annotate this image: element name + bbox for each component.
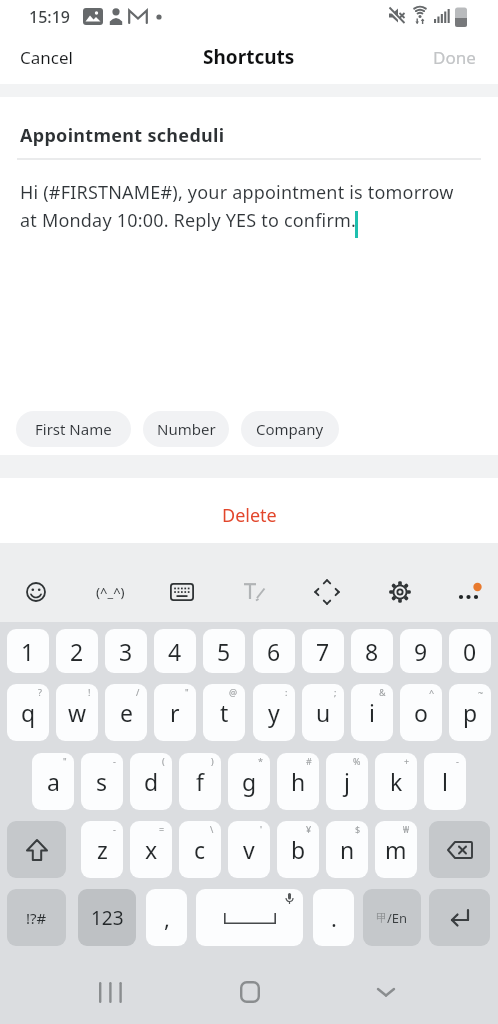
button[interactable] bbox=[450, 573, 488, 609]
staticText: , bbox=[164, 903, 170, 933]
button[interactable]: $ bbox=[326, 821, 368, 878]
staticText: f bbox=[196, 766, 204, 797]
staticText: v bbox=[243, 834, 255, 865]
staticText: q bbox=[21, 697, 36, 728]
button[interactable]: = bbox=[130, 821, 172, 878]
button[interactable]: @ bbox=[203, 684, 245, 741]
button[interactable]: : bbox=[253, 684, 295, 741]
button[interactable]: \ bbox=[179, 821, 221, 878]
button[interactable]: 5 bbox=[203, 629, 245, 673]
button[interactable]: Number bbox=[143, 411, 229, 447]
button[interactable]: Company bbox=[241, 411, 339, 447]
staticText: . bbox=[331, 903, 337, 933]
staticText: - bbox=[113, 755, 116, 767]
button[interactable]: " bbox=[32, 753, 74, 810]
staticText: k bbox=[390, 766, 403, 797]
button[interactable]: ? bbox=[7, 684, 49, 741]
staticText: Delete bbox=[222, 503, 277, 528]
button[interactable] bbox=[383, 575, 417, 609]
button[interactable]: - bbox=[81, 821, 123, 878]
button[interactable]: 4 bbox=[154, 629, 196, 673]
button[interactable]: 3 bbox=[105, 629, 147, 673]
button[interactable]: ¥ bbox=[277, 821, 319, 878]
staticText: 3 bbox=[119, 636, 133, 667]
button[interactable]: !?# bbox=[7, 889, 66, 946]
button[interactable]: ; bbox=[302, 684, 344, 741]
button[interactable] bbox=[429, 821, 490, 878]
staticText: # bbox=[306, 755, 312, 767]
staticText: e bbox=[120, 697, 133, 728]
staticText: p bbox=[463, 697, 478, 728]
button[interactable]: % bbox=[326, 753, 368, 810]
button[interactable] bbox=[19, 575, 53, 609]
staticText: l bbox=[442, 766, 448, 797]
button[interactable]: ^ bbox=[400, 684, 442, 741]
button[interactable] bbox=[226, 974, 274, 1010]
button[interactable]: + bbox=[375, 753, 417, 810]
staticText: Cancel bbox=[20, 46, 73, 69]
button[interactable]: 123 bbox=[78, 889, 136, 946]
button[interactable] bbox=[86, 974, 134, 1010]
button[interactable]: , bbox=[146, 889, 187, 946]
staticText: ^ bbox=[429, 686, 435, 698]
staticText: 0 bbox=[463, 636, 477, 667]
button[interactable] bbox=[196, 889, 303, 946]
button[interactable]: & bbox=[351, 684, 393, 741]
button[interactable] bbox=[7, 821, 66, 878]
button[interactable]: " bbox=[154, 684, 196, 741]
button[interactable]: 2 bbox=[56, 629, 98, 673]
staticText: 2 bbox=[70, 636, 84, 667]
button[interactable]: 7 bbox=[302, 629, 344, 673]
button[interactable]: ( bbox=[130, 753, 172, 810]
staticText: (^_^) bbox=[96, 583, 125, 601]
staticText: y bbox=[268, 697, 280, 728]
staticText: 15:19 bbox=[29, 6, 70, 28]
button[interactable]: ! bbox=[56, 684, 98, 741]
staticText: " bbox=[185, 686, 189, 698]
button[interactable]: ₩ bbox=[375, 821, 417, 878]
staticText: t bbox=[220, 697, 229, 728]
button[interactable]: Cancel bbox=[12, 38, 81, 77]
staticText: a bbox=[47, 766, 60, 797]
button[interactable]: 1 bbox=[7, 629, 49, 673]
button[interactable] bbox=[237, 575, 273, 609]
button[interactable] bbox=[310, 575, 344, 609]
button[interactable]: - bbox=[424, 753, 466, 810]
button[interactable]: / bbox=[105, 684, 147, 741]
button[interactable] bbox=[362, 974, 410, 1010]
button[interactable]: ) bbox=[179, 753, 221, 810]
staticText: Number bbox=[157, 419, 216, 439]
button[interactable]: (^_^) bbox=[88, 575, 132, 609]
button[interactable]: 8 bbox=[351, 629, 393, 673]
button[interactable]: ~ bbox=[449, 684, 491, 741]
staticText: Company bbox=[256, 419, 324, 439]
staticText: / bbox=[136, 686, 140, 698]
button[interactable]: - bbox=[81, 753, 123, 810]
button[interactable]: Delete bbox=[0, 493, 498, 537]
button[interactable] bbox=[429, 889, 490, 946]
button[interactable]: Done bbox=[425, 38, 484, 77]
button[interactable]: 9 bbox=[400, 629, 442, 673]
staticText: \ bbox=[210, 823, 214, 835]
staticText: o bbox=[414, 697, 428, 728]
button[interactable]: 0 bbox=[449, 629, 491, 673]
staticText: ( bbox=[162, 755, 165, 767]
staticText: % bbox=[353, 755, 361, 767]
staticText: 9 bbox=[414, 636, 428, 667]
button[interactable]: * bbox=[228, 753, 270, 810]
staticText: d bbox=[144, 766, 159, 797]
staticText: 5 bbox=[217, 636, 231, 667]
staticText: ' bbox=[260, 823, 263, 835]
button[interactable]: Shortcuts bbox=[203, 44, 295, 70]
staticText: ; bbox=[334, 686, 337, 698]
button[interactable]: # bbox=[277, 753, 319, 810]
button[interactable]: 甲 bbox=[363, 889, 421, 946]
button[interactable]: First Name bbox=[16, 411, 131, 447]
staticText: m bbox=[385, 834, 407, 865]
button[interactable]: ' bbox=[228, 821, 270, 878]
staticText: ¥ bbox=[306, 823, 312, 835]
button[interactable]: . bbox=[313, 889, 354, 946]
staticText: " bbox=[63, 755, 67, 767]
button[interactable] bbox=[165, 575, 199, 609]
button[interactable]: 6 bbox=[253, 629, 295, 673]
